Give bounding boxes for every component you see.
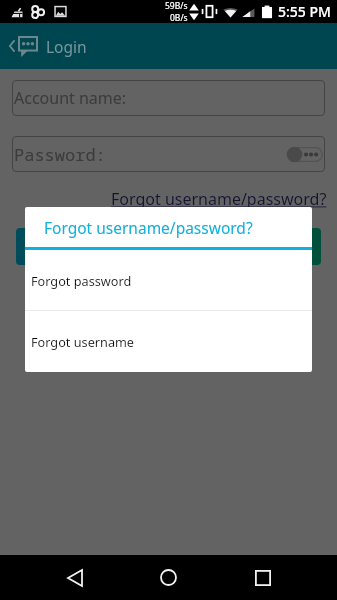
staticText: Forgot password [31,272,132,289]
staticText: 5:55 PM [278,2,331,21]
button[interactable]: Forgot username [25,311,312,372]
button[interactable]: Show password [287,147,323,162]
staticText: Account name: [14,87,127,109]
staticText: 0B/s [170,12,188,23]
staticText: Login [46,36,87,57]
button[interactable]: Account name: [12,80,325,116]
staticText: LOGIN [67,237,111,256]
staticText: 59B/s [165,0,188,12]
button[interactable]: Forgot username/password? [111,188,327,210]
staticText: Forgot username [31,333,135,350]
staticText: Forgot username/password? [44,217,253,238]
button[interactable]: Back [46,555,103,600]
button[interactable]: Forgot password [25,250,312,310]
staticText: REGISTER [216,237,280,256]
button[interactable]: LOGIN [16,228,161,265]
button[interactable]: REGISTER [175,228,321,265]
staticText: Password: [14,143,106,166]
button[interactable]: Home [140,555,197,600]
button[interactable]: Password: [12,136,325,172]
button[interactable]: Navigate up [0,23,337,69]
button[interactable]: Recent apps [234,555,291,600]
